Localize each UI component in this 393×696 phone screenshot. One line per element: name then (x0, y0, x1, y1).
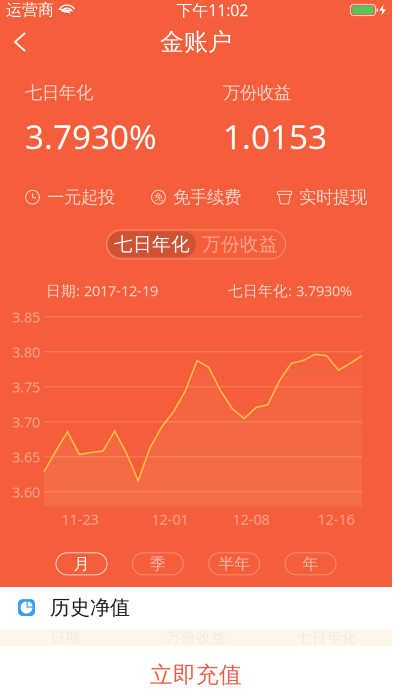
staticText: 3.85 (12, 307, 40, 327)
button[interactable]: 年 (285, 553, 336, 575)
staticText: 3.60 (12, 482, 40, 502)
staticText: 11-23 (61, 509, 98, 529)
staticText: 七日年化 (114, 233, 190, 256)
staticText: 3.65 (12, 447, 40, 467)
button[interactable]: 立即充值 (0, 661, 392, 689)
staticText: 万份收益 (166, 629, 226, 647)
staticText: 运营商 (6, 0, 54, 20)
staticText: 实时提现 (299, 187, 367, 208)
staticText: 年 (302, 554, 318, 574)
staticText: 3.7930% (25, 114, 157, 159)
staticText: 月 (73, 554, 89, 574)
staticText: 1.0153 (223, 114, 327, 159)
staticText: 下午11:02 (176, 0, 248, 21)
button[interactable]: 万份收益 (196, 231, 284, 257)
staticText: 万份收益 (202, 233, 278, 256)
button[interactable]: 实时提现 (277, 183, 367, 212)
button[interactable]: 月 (56, 553, 107, 575)
staticText: 12-08 (232, 509, 269, 529)
button[interactable]: 半年 (209, 553, 260, 575)
staticText: 12-16 (317, 509, 354, 529)
button[interactable]: 季 (132, 553, 183, 575)
staticText: 季 (150, 554, 166, 574)
button[interactable]: 一元起投 (25, 183, 115, 212)
staticText: 七日年化: 3.7930% (228, 281, 352, 300)
staticText: 立即充值 (150, 661, 242, 689)
button[interactable]: Back (0, 23, 47, 61)
staticText: 七日年化 (297, 629, 357, 647)
staticText: 12-01 (151, 509, 188, 529)
staticText: 3.75 (12, 377, 40, 397)
staticText: 3.80 (12, 342, 40, 362)
staticText: 免 (154, 191, 163, 203)
staticText: 3.70 (12, 412, 40, 432)
staticText: 半年 (218, 554, 250, 574)
staticText: 日期 (50, 629, 80, 647)
staticText: 日期: 2017-12-19 (46, 281, 158, 300)
staticText: 七日年化 (25, 82, 93, 103)
button[interactable]: 七日年化 (108, 231, 196, 257)
button[interactable]: 免 (151, 183, 241, 212)
staticText: 一元起投 (47, 187, 115, 208)
staticText: 历史净值 (50, 595, 130, 620)
staticText: 金账户 (160, 27, 232, 57)
staticText: 万份收益 (223, 82, 291, 103)
staticText: 免手续费 (173, 187, 241, 208)
button[interactable]: 历史净值 (0, 586, 392, 629)
